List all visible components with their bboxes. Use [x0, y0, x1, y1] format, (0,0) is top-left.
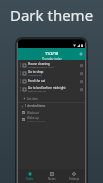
staticText: Settings	[69, 177, 80, 181]
button[interactable]: List item	[18, 95, 85, 102]
button[interactable]: Settings	[63, 169, 85, 183]
staticText: Workout	[27, 111, 39, 115]
button[interactable]: Notes	[41, 169, 63, 183]
button[interactable]: Go to bed before midnight	[18, 85, 85, 93]
staticText: Dark theme	[10, 5, 94, 25]
button[interactable]: More options	[78, 51, 84, 57]
staticText: Go to shop	[28, 70, 44, 74]
staticText: Repeats like task	[27, 120, 45, 123]
staticText: 11/2/18	[45, 51, 59, 56]
staticText: Shopping list	[28, 74, 43, 77]
button[interactable]: 1 checked items	[18, 103, 85, 109]
staticText: Notes	[48, 177, 56, 181]
button[interactable]: Wake up	[18, 116, 85, 123]
button[interactable]: Tasks	[18, 169, 41, 183]
staticText: Tasks	[26, 177, 33, 181]
button[interactable]: Star	[78, 86, 84, 92]
button[interactable]: House cleaning	[18, 61, 85, 69]
button[interactable]: Star	[78, 78, 84, 84]
staticText: Repeats like task	[28, 90, 46, 93]
staticText: Feed the cat	[28, 79, 46, 83]
button[interactable]: Feed the cat	[18, 77, 85, 85]
staticText: List item	[27, 97, 38, 101]
staticText: House cleaning	[28, 62, 50, 66]
staticText: Thursday, today	[42, 57, 62, 60]
button[interactable]: Workout	[18, 109, 85, 116]
staticText: Go to bed before midnight	[28, 86, 66, 90]
button[interactable]: Star	[78, 70, 84, 76]
button[interactable]: Go to shop	[18, 69, 85, 77]
staticText: 1 checked items	[25, 104, 46, 108]
staticText: Postponed from 2.12.18	[28, 66, 54, 69]
staticText: Wake up	[27, 116, 39, 120]
button[interactable]: Star	[78, 62, 84, 68]
